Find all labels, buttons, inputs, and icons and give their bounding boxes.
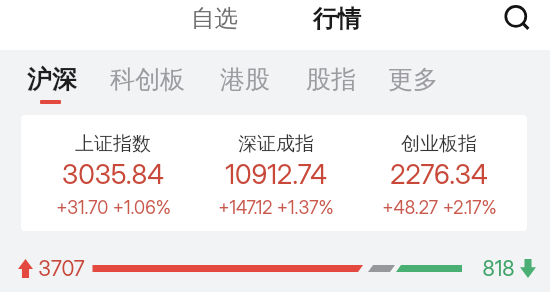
button[interactable]: 创业板指 xyxy=(359,115,519,231)
staticText: 上证指数 xyxy=(75,132,151,156)
staticText: 行情 xyxy=(313,4,361,34)
button[interactable]: 行情 xyxy=(305,0,369,44)
staticText: 3035.84 xyxy=(62,158,164,191)
staticText: 自选 xyxy=(191,3,238,33)
staticText: +147.12 +1.37% xyxy=(218,197,334,219)
button[interactable]: 上证指数 xyxy=(33,115,193,231)
staticText: +48.27 +2.17% xyxy=(382,197,497,219)
staticText: 股指 xyxy=(306,64,356,95)
button[interactable]: 更多 xyxy=(388,56,438,106)
staticText: 2276.34 xyxy=(390,158,488,191)
staticText: 科创板 xyxy=(110,64,185,95)
button[interactable]: 自选 xyxy=(185,0,243,43)
staticText: 港股 xyxy=(220,64,270,95)
button[interactable]: Search xyxy=(495,0,545,45)
staticText: +31.70 +1.06% xyxy=(56,197,171,219)
button[interactable]: 港股 xyxy=(220,56,270,106)
button[interactable]: 深证成指 xyxy=(196,115,356,231)
button[interactable]: 科创板 xyxy=(110,56,185,106)
staticText: 沪深 xyxy=(27,64,77,95)
staticText: 更多 xyxy=(388,64,438,95)
button[interactable]: 沪深 xyxy=(27,56,77,106)
staticText: 10912.74 xyxy=(225,158,327,191)
staticText: 深证成指 xyxy=(238,132,314,156)
staticText: 创业板指 xyxy=(401,132,477,156)
staticText: 3707 xyxy=(38,256,85,281)
button[interactable]: 股指 xyxy=(306,56,356,106)
staticText: 818 xyxy=(482,256,515,281)
